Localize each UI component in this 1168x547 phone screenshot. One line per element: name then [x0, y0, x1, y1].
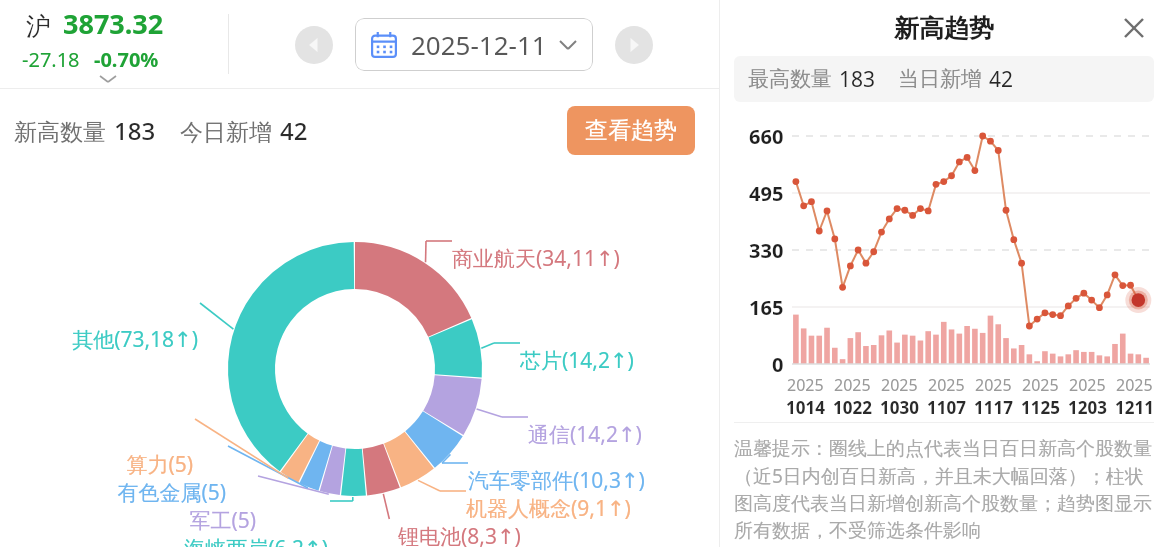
- staticText: 当日新增: [898, 66, 982, 92]
- staticText: 2025: [975, 374, 1012, 396]
- button[interactable]: 最高数量: [734, 56, 1154, 102]
- staticText: 锂电池(8,3↑): [398, 522, 521, 547]
- staticText: 3873.32: [63, 5, 164, 42]
- staticText: 今日新增: [180, 118, 272, 147]
- button[interactable]: 2025-12-11: [355, 18, 593, 71]
- staticText: 42: [280, 114, 308, 147]
- staticText: 2025: [1022, 374, 1059, 396]
- staticText: 商业航天(34,11↑): [452, 244, 620, 273]
- staticText: 183: [114, 114, 156, 147]
- staticText: 机器人概念(9,1↑): [466, 494, 631, 523]
- staticText: 温馨提示：圈线上的点代表当日百日新高个股数量（近5日内创百日新高，并且未大幅回落…: [734, 437, 1154, 543]
- staticText: 1125: [1021, 396, 1060, 419]
- staticText: 660: [749, 123, 784, 150]
- staticText: 2025: [928, 374, 965, 396]
- button[interactable]: 查看趋势: [567, 106, 695, 155]
- staticText: 1030: [880, 396, 919, 419]
- staticText: 2025: [787, 374, 824, 396]
- staticText: 2025: [1116, 374, 1153, 396]
- button[interactable]: Previous day: [295, 26, 333, 64]
- staticText: -27.18: [22, 46, 80, 73]
- staticText: 通信(14,2↑): [528, 420, 642, 449]
- staticText: 其他(73,18↑): [72, 325, 198, 354]
- staticText: 最高数量: [748, 66, 832, 92]
- staticText: 1117: [974, 396, 1013, 419]
- staticText: 2025-12-11: [411, 27, 547, 62]
- staticText: 2025: [834, 374, 871, 396]
- staticText: 汽车零部件(10,3↑): [468, 466, 645, 495]
- staticText: 330: [749, 237, 784, 264]
- staticText: 1014: [786, 396, 825, 419]
- button[interactable]: Next day: [615, 26, 653, 64]
- staticText: 新高数量: [14, 118, 106, 147]
- staticText: -0.70%: [94, 46, 159, 73]
- staticText: 军工(5): [189, 506, 256, 535]
- staticText: 2025: [1069, 374, 1106, 396]
- staticText: 1203: [1068, 396, 1107, 419]
- staticText: 0: [772, 351, 784, 378]
- button[interactable]: Close: [1114, 8, 1154, 48]
- staticText: 新高趋势: [894, 13, 994, 44]
- staticText: 183: [839, 65, 876, 94]
- staticText: 沪: [26, 11, 51, 42]
- staticText: 算力(5): [126, 450, 193, 479]
- staticText: 42: [989, 65, 1014, 94]
- staticText: 查看趋势: [585, 116, 677, 145]
- staticText: 2025: [881, 374, 918, 396]
- button[interactable]: 沪: [0, 0, 228, 88]
- staticText: 1107: [927, 396, 966, 419]
- staticText: 芯片(14,2↑): [520, 346, 634, 375]
- staticText: 有色金属(5): [117, 478, 226, 507]
- staticText: 1211: [1115, 396, 1154, 419]
- staticText: 165: [749, 294, 784, 321]
- staticText: 495: [749, 180, 784, 207]
- staticText: 海峡两岸(6,2↑): [184, 534, 328, 547]
- staticText: 1022: [833, 396, 872, 419]
